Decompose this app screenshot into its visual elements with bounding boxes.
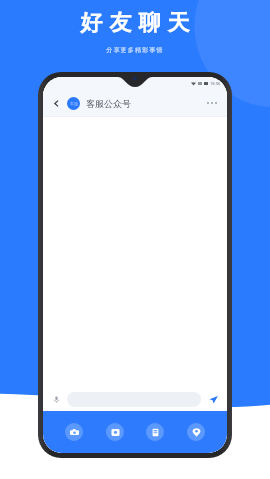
button[interactable]: More options <box>204 96 220 110</box>
button[interactable]: 客服公众号 <box>86 98 131 109</box>
button[interactable]: Voice input <box>50 393 63 406</box>
staticText: 18:06 <box>210 81 221 86</box>
button[interactable]: Location <box>187 423 205 441</box>
button[interactable]: Avatar <box>67 97 80 110</box>
button[interactable]: Back <box>50 97 62 109</box>
button[interactable]: Photos <box>106 423 124 441</box>
button[interactable]: Files <box>146 423 164 441</box>
staticText: 好友聊天 <box>77 9 193 37</box>
staticText: 客服 <box>70 101 78 106</box>
button[interactable]: Camera <box>65 423 83 441</box>
button[interactable]: Send <box>206 392 220 406</box>
staticText: 分享更多精彩事情 <box>106 46 164 54</box>
